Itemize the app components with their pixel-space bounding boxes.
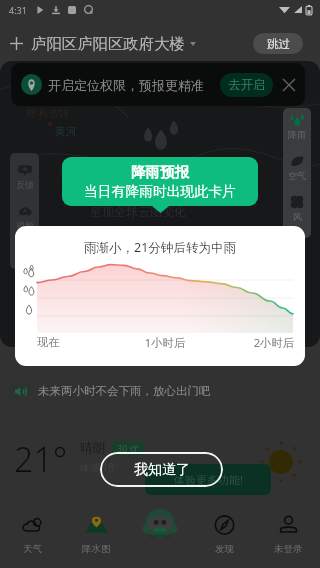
staticText: 体感 18°: [80, 460, 119, 474]
staticText: 太原: [96, 178, 114, 189]
staticText: 发现: [215, 543, 234, 555]
staticText: 1小时后: [122, 335, 208, 350]
button[interactable]: 空气: [288, 153, 306, 181]
button[interactable]: Assistant: [128, 506, 192, 568]
staticText: 21°: [14, 436, 68, 482]
staticText: 跳过: [267, 37, 290, 51]
staticText: 风: [293, 211, 302, 222]
button[interactable]: 开启定位权限，预报更精准: [11, 63, 305, 106]
staticText: 体验更多功能!: [174, 472, 243, 487]
staticText: 郑州: [118, 199, 136, 210]
button[interactable]: 未登录: [256, 506, 320, 568]
staticText: 庐阳区庐阳区政府大楼: [31, 34, 185, 53]
staticText: 银川: [58, 167, 76, 178]
button[interactable]: Close: [281, 77, 297, 93]
button[interactable]: 我知道了: [100, 452, 223, 487]
staticText: 我知道了: [134, 461, 190, 479]
staticText: 呈现全球云图变化: [90, 204, 186, 219]
button[interactable]: 跳过: [253, 33, 303, 54]
staticText: 呼和浩特: [27, 107, 69, 120]
staticText: 雨渐小，21分钟后转为中雨: [15, 239, 305, 256]
staticText: 降水图: [82, 543, 111, 555]
staticText: 4:31: [9, 4, 27, 16]
button[interactable]: Play forecast audio: [9, 380, 31, 402]
staticText: 降雨: [288, 129, 306, 140]
staticText: 2小时后: [208, 335, 294, 350]
staticText: 反馈: [16, 179, 34, 190]
staticText: 去开启: [228, 77, 266, 93]
staticText: 当日有降雨时出现此卡片: [84, 183, 236, 200]
staticText: 现在: [37, 335, 122, 349]
staticText: 天气: [23, 543, 42, 555]
button[interactable]: 去开启: [220, 73, 273, 97]
staticText: 未登录: [274, 543, 303, 555]
staticText: 晴朗: [80, 440, 105, 456]
button[interactable]: 风: [289, 194, 305, 222]
staticText: 30 优: [117, 442, 139, 454]
staticText: 石家庄: [152, 175, 179, 186]
button[interactable]: 天气: [0, 506, 64, 568]
staticText: 降雨预报: [131, 163, 189, 181]
button[interactable]: 雨渐小，21分钟后转为中雨: [15, 226, 305, 366]
staticText: 空气: [288, 170, 306, 181]
button[interactable]: 发现: [192, 506, 256, 568]
button[interactable]: 反馈: [16, 163, 34, 190]
staticText: 未来两小时不会下雨，放心出门吧: [38, 384, 211, 398]
staticText: 开启定位权限，预报更精准: [48, 77, 204, 93]
staticText: 黄河: [55, 124, 77, 138]
button[interactable]: 降雨: [288, 113, 306, 140]
staticText: 视频: [16, 220, 34, 231]
button[interactable]: 降水图: [64, 506, 128, 568]
button[interactable]: 视频: [16, 204, 34, 231]
button[interactable]: Add city: [10, 37, 23, 50]
